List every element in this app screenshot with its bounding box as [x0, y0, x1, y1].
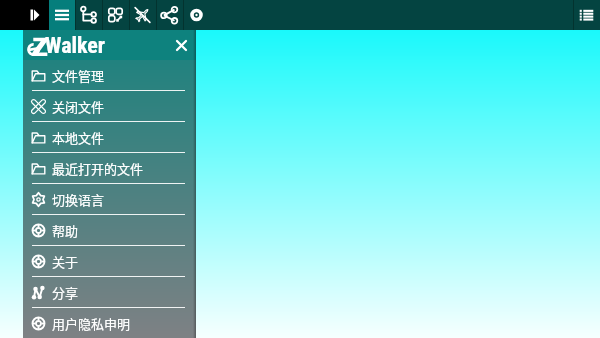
button[interactable]: Open navigation drawer	[49, 0, 75, 30]
staticText: 分享	[52, 283, 79, 302]
button[interactable]: 最近打开的文件	[23, 153, 196, 183]
button[interactable]: Expand panel	[27, 7, 43, 23]
button[interactable]: 关于	[23, 246, 196, 276]
button[interactable]: File tree	[75, 0, 102, 30]
staticText: 用户隐私申明	[52, 314, 131, 333]
button[interactable]: 关闭文件	[23, 91, 196, 121]
button[interactable]: Airplane mode off	[129, 0, 156, 30]
staticText: Walker	[45, 33, 106, 59]
button[interactable]: 本地文件	[23, 122, 196, 152]
staticText: 最近打开的文件	[52, 159, 144, 178]
button[interactable]: List view	[573, 0, 600, 30]
button[interactable]: 切换语言	[23, 184, 196, 214]
button[interactable]: 用户隐私申明	[23, 308, 196, 338]
button[interactable]: 分享	[23, 277, 196, 307]
button[interactable]: QR code	[102, 0, 129, 30]
staticText: 帮助	[52, 221, 79, 240]
button[interactable]: Record	[183, 0, 210, 30]
staticText: 本地文件	[52, 128, 105, 147]
staticText: 切换语言	[52, 190, 105, 209]
button[interactable]: Share	[156, 0, 183, 30]
button[interactable]: Close drawer	[168, 30, 194, 60]
staticText: 文件管理	[52, 66, 105, 85]
staticText: 关于	[52, 252, 79, 271]
button[interactable]: 帮助	[23, 215, 196, 245]
staticText: 关闭文件	[52, 97, 105, 116]
button[interactable]: 文件管理	[23, 60, 196, 90]
